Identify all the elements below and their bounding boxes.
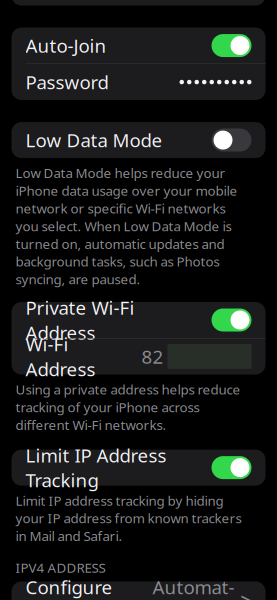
staticText: Limit IP Address Tracking: [25, 443, 166, 492]
staticText: 82: [141, 344, 163, 369]
button[interactable]: Forget This Network: [11, 0, 265, 6]
staticText: IPV4 ADDRESS: [15, 559, 105, 576]
staticText: Auto-Join: [25, 33, 106, 58]
staticText: Configure IP: [25, 575, 112, 600]
staticText: Automatic: [152, 575, 234, 600]
staticText: Low Data Mode helps reduce your iPhone d…: [15, 164, 237, 288]
button[interactable]: Configure IP: [11, 581, 265, 600]
staticText: Low Data Mode: [25, 128, 162, 152]
staticText: Wi-Fi Address: [25, 332, 95, 381]
staticText: Limit IP address tracking by hiding your…: [15, 492, 241, 545]
button[interactable]: Low Data Mode: [11, 122, 265, 158]
button[interactable]: Auto-Join: [11, 28, 265, 64]
button[interactable]: Limit IP Address Tracking: [11, 450, 265, 486]
staticText: >: [240, 587, 251, 600]
button[interactable]: Password: [11, 64, 265, 100]
button[interactable]: Private Wi-Fi Address: [11, 302, 265, 338]
staticText: Password: [25, 70, 108, 94]
staticText: Private Wi-Fi Address: [25, 295, 134, 345]
staticText: Using a private address helps reduce tra…: [15, 380, 240, 434]
